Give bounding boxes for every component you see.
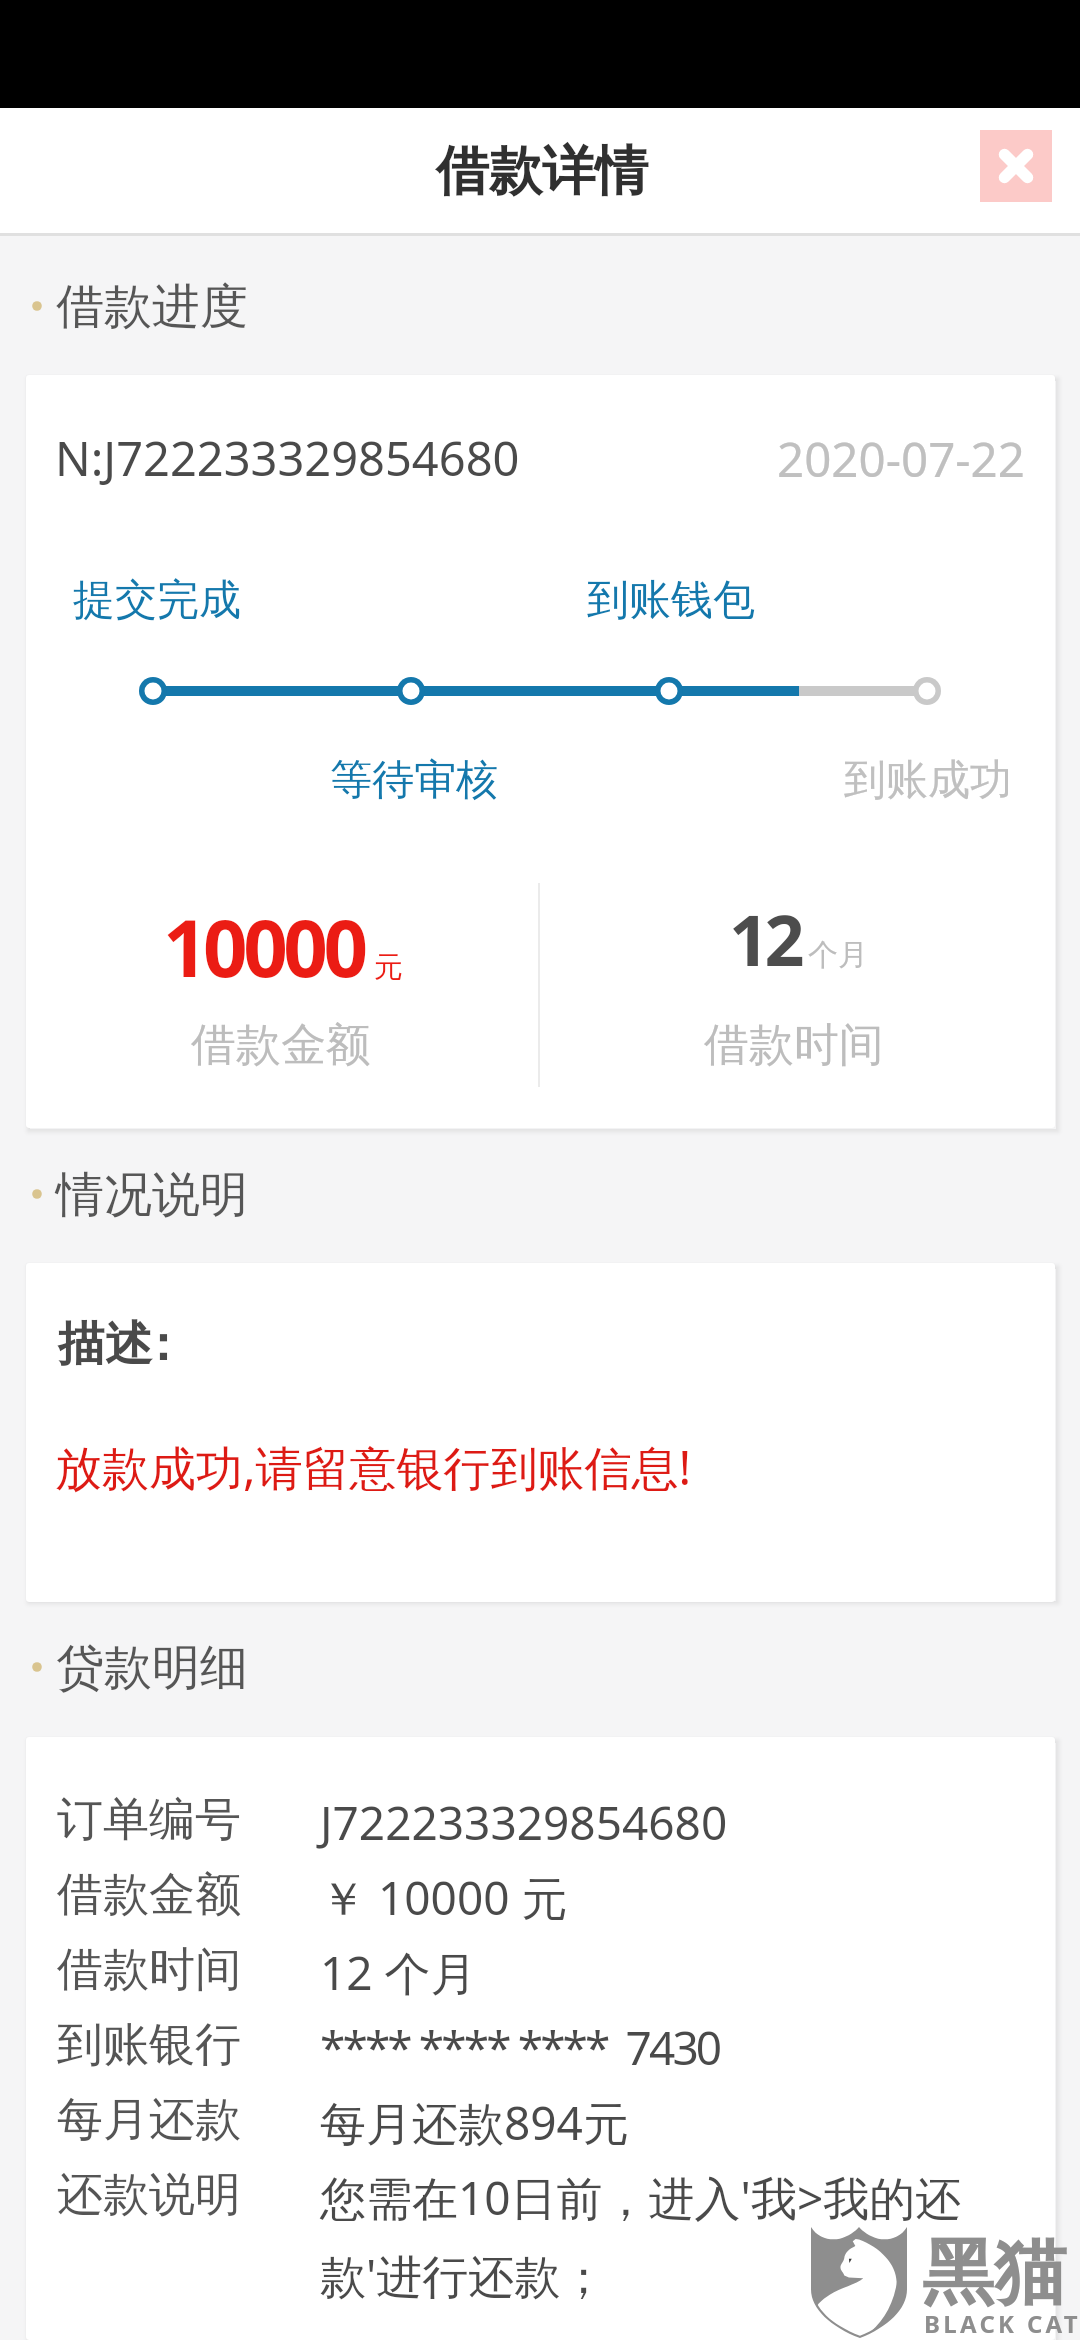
staticText: 到账银行 — [57, 2016, 241, 2074]
staticText: ： — [139, 1315, 186, 1374]
staticText: 借款详情 — [436, 138, 648, 205]
staticText: 描述 — [58, 1315, 152, 1374]
staticText: 10000 — [163, 894, 364, 1000]
staticText: J722233329854680 — [320, 1791, 1020, 1854]
staticText: 订单编号 — [57, 1791, 241, 1849]
staticText: 到账成功 — [844, 754, 1012, 807]
staticText: 借款金额 — [57, 1866, 241, 1924]
staticText: 等待审核 — [330, 754, 498, 807]
staticText: 到账钱包 — [587, 574, 755, 627]
staticText: 每月还款894元 — [320, 2091, 1020, 2154]
staticText: **** **** **** 7430 — [320, 2016, 1020, 2079]
staticText: 放款成功,请留意银行到账信息! — [55, 1435, 692, 1499]
staticText: 借款进度 — [56, 277, 248, 337]
staticText: 黑猫 — [922, 2228, 1066, 2319]
button[interactable]: Close — [980, 130, 1052, 202]
staticText: 2020-07-22 — [777, 426, 1025, 491]
staticText: 元 — [374, 949, 403, 986]
staticText: 您需在10日前，进入'我>我的还款'进行还款； — [320, 2166, 1020, 2307]
staticText: BLACK CAT — [924, 2307, 1080, 2340]
staticText: 12 个月 — [320, 1941, 1020, 2004]
staticText: 提交完成 — [73, 574, 241, 627]
staticText: 情况说明 — [56, 1165, 248, 1225]
staticText: 贷款明细 — [56, 1638, 248, 1698]
staticText: 还款说明 — [57, 2166, 241, 2224]
staticText: 个月 — [808, 936, 868, 974]
staticText: 借款时间 — [57, 1941, 241, 1999]
staticText: 借款时间 — [704, 1017, 884, 1074]
staticText: ￥ 10000 元 — [320, 1866, 1020, 1929]
staticText: 借款金额 — [191, 1017, 371, 1074]
staticText: 12 — [729, 891, 801, 986]
staticText: 每月还款 — [57, 2091, 241, 2149]
staticText: N:J722233329854680 — [55, 426, 520, 490]
